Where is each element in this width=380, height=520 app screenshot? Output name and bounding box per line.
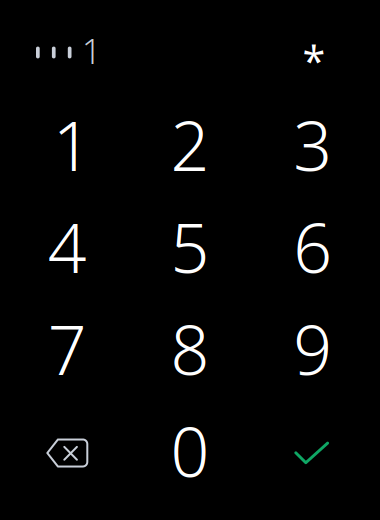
staticText: 2 [170, 99, 209, 190]
button[interactable]: 8 [129, 297, 251, 399]
button[interactable]: 0 [129, 399, 251, 501]
button[interactable]: More options [303, 26, 343, 66]
button[interactable]: 9 [251, 297, 374, 399]
button[interactable]: 7 [6, 297, 129, 399]
button[interactable]: 4 [6, 195, 129, 297]
staticText: 6 [293, 201, 332, 292]
button[interactable]: Delete [6, 399, 129, 501]
button[interactable]: 5 [129, 195, 251, 297]
button[interactable]: Confirm [251, 399, 374, 501]
staticText: 8 [170, 303, 209, 394]
button[interactable]: 2 [129, 93, 251, 195]
staticText: 5 [170, 201, 209, 292]
button[interactable]: 3 [251, 93, 374, 195]
button[interactable]: 6 [251, 195, 374, 297]
staticText: 3 [293, 99, 332, 190]
staticText: 9 [293, 303, 332, 394]
button[interactable]: 1 [6, 93, 129, 195]
staticText: 1 [53, 99, 92, 190]
staticText: 1 [82, 27, 102, 73]
staticText: 4 [48, 201, 87, 292]
staticText: 7 [48, 303, 87, 394]
staticText: * [302, 33, 325, 88]
staticText: 0 [170, 405, 209, 496]
